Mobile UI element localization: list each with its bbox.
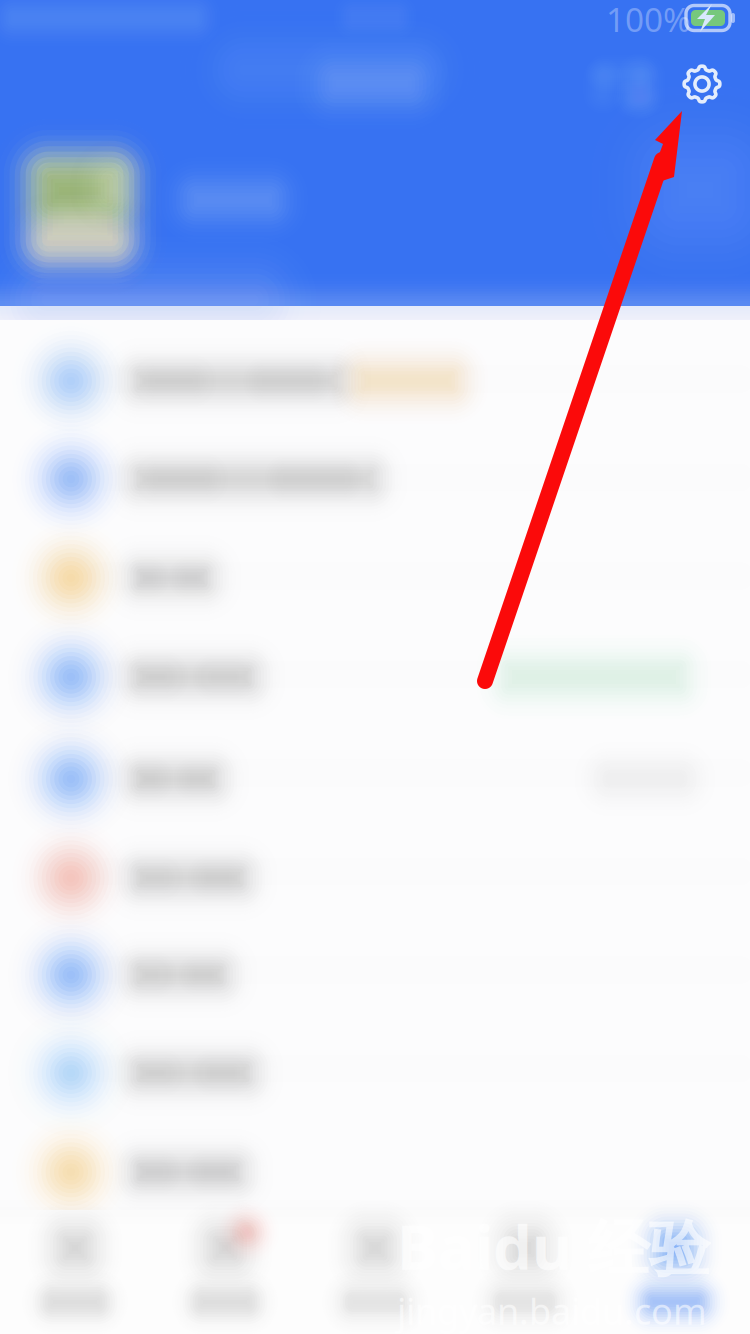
button[interactable]: Settings	[668, 50, 736, 118]
button[interactable]	[0, 0, 750, 1334]
button[interactable]	[0, 0, 750, 1334]
button[interactable]: Tab 2	[0, 0, 750, 1334]
button[interactable]: Tab 4	[0, 0, 750, 1334]
button[interactable]	[0, 0, 750, 1334]
staticText: Baidu 经验	[397, 1205, 710, 1287]
button[interactable]: Profile	[21, 147, 171, 297]
button[interactable]	[0, 0, 750, 1334]
button[interactable]	[0, 0, 750, 1334]
button[interactable]	[0, 0, 750, 1334]
button[interactable]: Customer service	[591, 52, 655, 116]
button[interactable]	[0, 0, 750, 1334]
button[interactable]: Tab 3	[0, 0, 750, 1334]
button[interactable]	[0, 0, 750, 1334]
button[interactable]: Tab 5	[0, 0, 750, 1334]
button[interactable]	[0, 0, 750, 1334]
button[interactable]: Tab 1	[0, 0, 750, 1334]
staticText: 100%	[606, 0, 691, 41]
staticText: jingyan.baidu.com	[397, 1287, 707, 1334]
